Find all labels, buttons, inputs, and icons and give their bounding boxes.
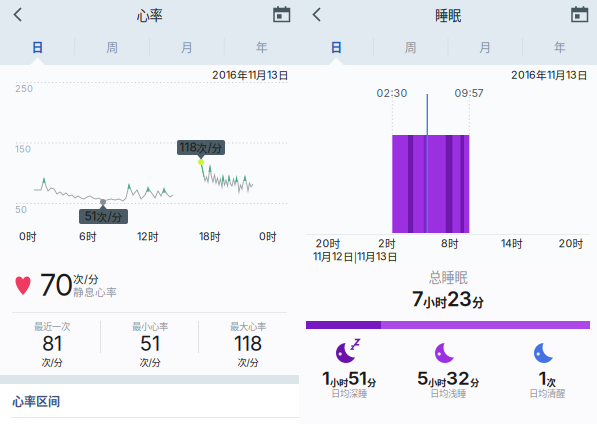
staticText: 2016年11月13日 (212, 67, 289, 82)
staticText: 5小时32分 (417, 367, 479, 389)
staticText: 次/分 (139, 355, 160, 369)
button[interactable]: 年 (224, 29, 299, 65)
staticText: 09:57 (454, 86, 483, 99)
button[interactable]: 日 (0, 29, 75, 65)
staticText: 年 (256, 38, 268, 56)
staticText: 70 (40, 267, 73, 303)
staticText: 2时 (378, 235, 396, 251)
staticText: 日均清醒 (529, 386, 565, 400)
staticText: 1小时51分 (322, 367, 376, 389)
staticText: 8时 (441, 235, 459, 251)
staticText: 月 (479, 38, 491, 56)
staticText: 81 (42, 331, 62, 356)
button[interactable]: 周 (75, 29, 150, 65)
staticText: 20时 (315, 235, 340, 251)
staticText: 51次/分 (84, 209, 122, 224)
staticText: 日 (330, 38, 342, 56)
staticText: 心率区间 (12, 392, 60, 410)
staticText: 日均浅睡 (430, 386, 466, 400)
staticText: 次/分 (237, 355, 258, 369)
staticText: 1次 (538, 367, 555, 389)
staticText: 月 (181, 38, 193, 56)
staticText: 日 (31, 38, 43, 56)
button[interactable]: 周 (373, 29, 448, 65)
staticText: 0时 (259, 228, 277, 244)
staticText: 20时 (558, 235, 583, 251)
staticText: 118次/分 (179, 140, 222, 155)
staticText: 周 (106, 38, 118, 56)
button[interactable]: 月 (448, 29, 522, 65)
staticText: 7小时23分 (412, 287, 484, 311)
button[interactable]: Back (303, 0, 331, 29)
staticText: 6时 (79, 228, 97, 244)
staticText: 12时 (137, 228, 159, 244)
staticText: 18时 (199, 228, 221, 244)
button[interactable]: 年 (522, 29, 597, 65)
staticText: 最近一次 (34, 319, 70, 333)
staticText: 250 (15, 83, 33, 94)
staticText: 静息心率 (73, 284, 117, 299)
staticText: 心率 (136, 5, 162, 24)
staticText: 最小心率 (132, 319, 168, 333)
staticText: 日均深睡 (331, 386, 367, 400)
staticText: 次/分 (41, 355, 62, 369)
staticText: 年 (554, 38, 566, 56)
button[interactable]: Calendar (268, 0, 296, 29)
staticText: 0时 (19, 228, 37, 244)
staticText: 51 (140, 331, 160, 356)
button[interactable]: Back (4, 0, 32, 29)
staticText: 最大心率 (230, 319, 266, 333)
staticText: 14时 (501, 235, 523, 251)
button[interactable]: 日 (299, 29, 373, 65)
staticText: 周 (405, 38, 417, 56)
staticText: 总睡眠 (428, 267, 467, 286)
staticText: 150 (15, 143, 31, 155)
staticText: 2016年11月13日 (511, 67, 588, 82)
staticText: 11月12日|11月13日 (313, 248, 398, 264)
staticText: 睡眠 (435, 5, 461, 24)
staticText: 50 (15, 204, 27, 215)
staticText: 02:30 (376, 86, 407, 99)
staticText: 118 (234, 331, 262, 356)
button[interactable]: Calendar (566, 0, 594, 29)
button[interactable]: 月 (149, 29, 224, 65)
staticText: 次/分 (73, 271, 99, 286)
